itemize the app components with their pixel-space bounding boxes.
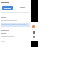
button[interactable]: [2, 6, 13, 10]
